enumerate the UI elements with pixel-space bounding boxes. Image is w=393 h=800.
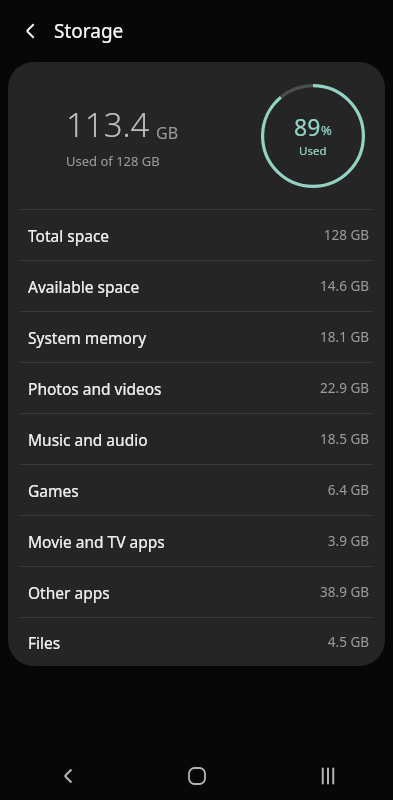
- button[interactable]: Available space: [8, 261, 385, 311]
- staticText: Files: [28, 632, 61, 653]
- staticText: 113.4: [66, 102, 150, 147]
- staticText: 14.6 GB: [320, 277, 369, 295]
- staticText: 6.4 GB: [327, 481, 369, 499]
- staticText: 4.5 GB: [327, 633, 369, 651]
- staticText: Music and audio: [28, 429, 148, 450]
- staticText: 22.9 GB: [320, 379, 369, 397]
- staticText: 3.9 GB: [327, 532, 369, 550]
- staticText: Games: [28, 480, 79, 501]
- button[interactable]: Movie and TV apps: [8, 516, 385, 566]
- button[interactable]: Home: [131, 752, 262, 800]
- staticText: 18.5 GB: [320, 430, 369, 448]
- staticText: %: [321, 121, 332, 139]
- button[interactable]: Photos and videos: [8, 363, 385, 413]
- staticText: System memory: [28, 327, 147, 348]
- button[interactable]: Files: [8, 618, 385, 666]
- staticText: Used of 128 GB: [66, 152, 160, 170]
- button[interactable]: Other apps: [8, 567, 385, 617]
- staticText: Used: [299, 143, 327, 159]
- staticText: Other apps: [28, 582, 110, 603]
- button[interactable]: Games: [8, 465, 385, 515]
- staticText: Storage: [54, 18, 124, 44]
- staticText: Available space: [28, 276, 140, 297]
- staticText: 128 GB: [323, 226, 369, 244]
- button[interactable]: Recent apps: [262, 752, 393, 800]
- staticText: GB: [156, 122, 179, 144]
- button[interactable]: Back: [10, 13, 46, 49]
- staticText: Total space: [28, 225, 110, 246]
- staticText: Photos and videos: [28, 378, 162, 399]
- staticText: 89: [294, 111, 321, 142]
- staticText: Movie and TV apps: [28, 531, 165, 552]
- staticText: 18.1 GB: [320, 328, 369, 346]
- button[interactable]: Back: [0, 752, 131, 800]
- staticText: 38.9 GB: [320, 583, 369, 601]
- button[interactable]: System memory: [8, 312, 385, 362]
- button[interactable]: Total space: [8, 210, 385, 260]
- button[interactable]: Music and audio: [8, 414, 385, 464]
